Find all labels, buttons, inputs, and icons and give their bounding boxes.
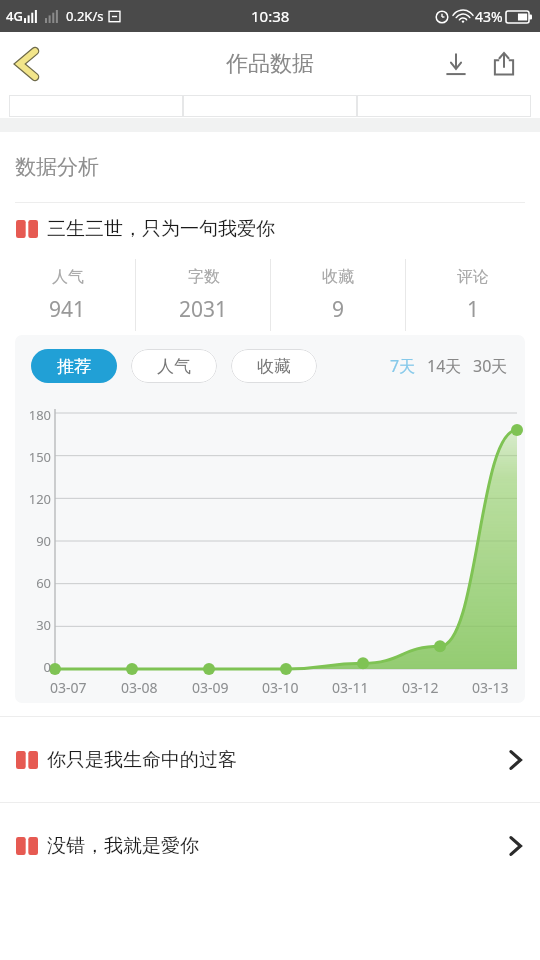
staticText: 941 xyxy=(49,295,86,324)
button[interactable]: 没错，我就是愛你 xyxy=(0,803,540,888)
staticText: 推荐 xyxy=(57,356,91,377)
staticText: 你只是我生命中的过客 xyxy=(47,748,237,772)
staticText: 没错，我就是愛你 xyxy=(47,834,199,858)
staticText: 0.2K/s xyxy=(66,7,104,25)
staticText: 字数 xyxy=(188,267,220,287)
staticText: 03-07 xyxy=(50,678,87,697)
button[interactable]: Back xyxy=(0,32,56,96)
staticText: 03-08 xyxy=(121,678,158,697)
button[interactable]: 你只是我生命中的过客 xyxy=(0,717,540,802)
staticText: 03-11 xyxy=(332,678,369,697)
button[interactable]: 7天 xyxy=(387,349,419,383)
button[interactable]: 人气 xyxy=(131,349,217,383)
button[interactable]: Download xyxy=(434,36,478,92)
staticText: 9 xyxy=(332,295,345,324)
staticText: 人气 xyxy=(157,356,191,377)
staticText: 收藏 xyxy=(257,356,291,377)
staticText: 三生三世，只为一句我爱你 xyxy=(47,217,275,241)
button[interactable]: 推荐 xyxy=(31,349,117,383)
staticText: 2031 xyxy=(179,295,228,324)
staticText: 03-13 xyxy=(472,678,509,697)
staticText: 03-12 xyxy=(402,678,439,697)
staticText: 03-10 xyxy=(262,678,299,697)
staticText: 60 xyxy=(36,574,51,592)
staticText: 120 xyxy=(28,490,51,508)
staticText: 评论 xyxy=(457,267,489,287)
staticText: 数据分析 xyxy=(15,154,99,180)
button[interactable]: Share xyxy=(482,36,526,92)
staticText: 4G xyxy=(6,7,23,25)
staticText: 150 xyxy=(28,448,51,466)
staticText: 作品数据 xyxy=(226,50,314,78)
staticText: 1 xyxy=(467,295,480,324)
staticText: 180 xyxy=(28,406,51,424)
button[interactable]: 14天 xyxy=(424,349,465,383)
button[interactable]: 30天 xyxy=(470,349,511,383)
staticText: 30 xyxy=(36,616,51,634)
staticText: 03-09 xyxy=(192,678,229,697)
button[interactable]: 收藏 xyxy=(231,349,317,383)
staticText: 0 xyxy=(43,658,51,676)
staticText: 人气 xyxy=(52,267,84,287)
staticText: 14天 xyxy=(427,355,462,377)
staticText: 30天 xyxy=(473,355,508,377)
staticText: 90 xyxy=(36,532,51,550)
staticText: 7天 xyxy=(390,355,416,377)
staticText: 43% xyxy=(475,7,503,26)
staticText: 10:38 xyxy=(251,6,290,26)
staticText: 收藏 xyxy=(322,267,354,287)
